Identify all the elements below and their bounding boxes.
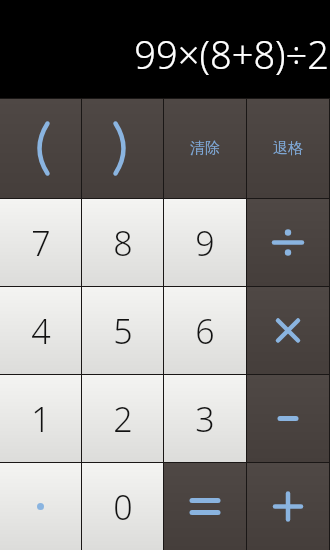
button[interactable]: 9 — [164, 199, 246, 286]
button[interactable]: Decimal point — [0, 463, 81, 550]
staticText: 退格 — [273, 139, 303, 158]
button[interactable]: Minus — [247, 375, 329, 462]
staticText: 6 — [195, 308, 215, 354]
staticText: 99×(8+8)÷2 — [134, 28, 329, 80]
button[interactable]: 5 — [82, 287, 163, 374]
button[interactable]: 6 — [164, 287, 246, 374]
button[interactable]: Close parenthesis — [82, 99, 163, 198]
button[interactable]: 3 — [164, 375, 246, 462]
button[interactable]: Plus — [247, 463, 329, 550]
button[interactable]: 清除 — [164, 99, 246, 198]
staticText: 8 — [113, 220, 133, 266]
staticText: 7 — [31, 220, 51, 266]
staticText: 9 — [195, 220, 215, 266]
staticText: 4 — [31, 308, 51, 354]
staticText: 2 — [113, 396, 133, 442]
staticText: 1 — [31, 396, 51, 442]
button[interactable]: 1 — [0, 375, 81, 462]
button[interactable]: 0 — [82, 463, 163, 550]
button[interactable]: 7 — [0, 199, 81, 286]
staticText: 5 — [113, 308, 133, 354]
button[interactable]: 4 — [0, 287, 81, 374]
button[interactable]: 退格 — [247, 99, 329, 198]
staticText: 3 — [195, 396, 215, 442]
button[interactable]: 2 — [82, 375, 163, 462]
button[interactable]: Open parenthesis — [0, 99, 81, 198]
button[interactable]: Multiply — [247, 287, 329, 374]
staticText: 0 — [113, 484, 133, 530]
button[interactable]: Equals — [164, 463, 246, 550]
staticText: 清除 — [190, 139, 220, 158]
button[interactable]: Divide — [247, 199, 329, 286]
button[interactable]: 8 — [82, 199, 163, 286]
